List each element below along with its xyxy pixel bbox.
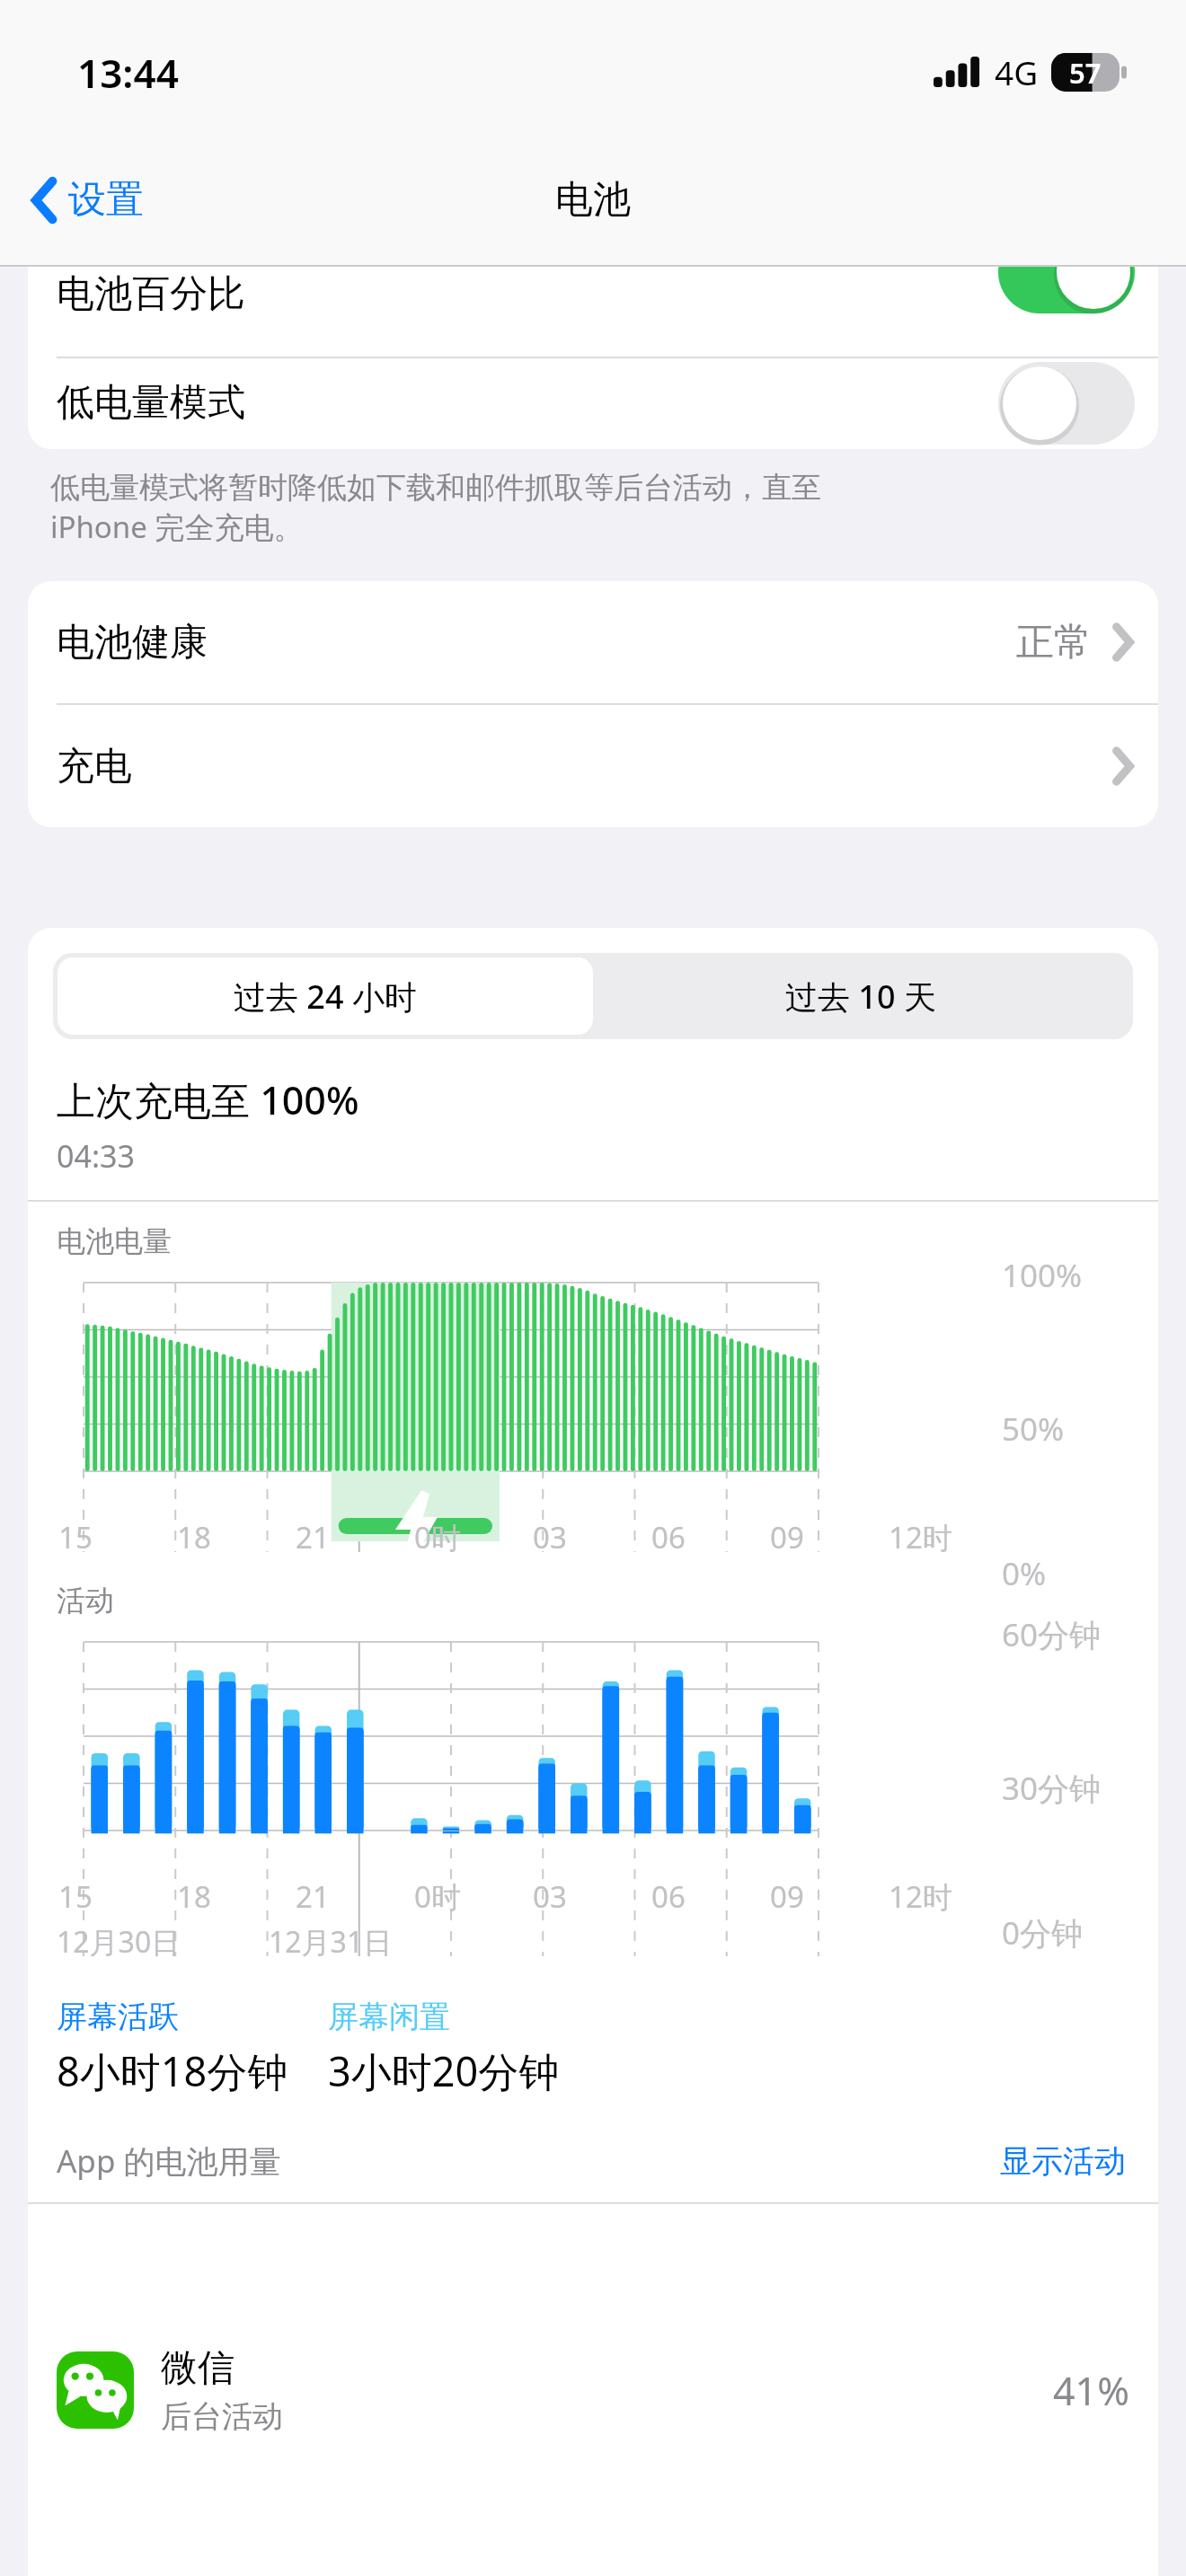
staticText: App 的电池用量 xyxy=(57,2139,281,2183)
button[interactable]: 过去 10 天 xyxy=(593,957,1128,1035)
staticText: 57 xyxy=(1069,54,1102,92)
staticText: 充电 xyxy=(57,743,132,790)
staticText: 09 xyxy=(770,1517,804,1557)
button[interactable]: 低电量模式 xyxy=(28,357,1158,449)
staticText: 41% xyxy=(1053,2364,1129,2417)
staticText: 50% xyxy=(1002,1407,1065,1451)
staticText: 60分钟 xyxy=(1002,1613,1102,1656)
staticText: 21 xyxy=(296,1517,330,1557)
button[interactable]: Off xyxy=(998,362,1135,445)
staticText: 4G xyxy=(995,49,1039,94)
staticText: 电池 xyxy=(555,176,631,224)
staticText: 04:33 xyxy=(57,1135,135,1177)
staticText: 低电量模式 xyxy=(57,379,245,427)
staticText: 屏幕活跃 xyxy=(57,1998,179,2036)
staticText: 06 xyxy=(651,1517,686,1557)
staticText: 后台活动 xyxy=(161,2397,283,2436)
staticText: 15 xyxy=(58,1517,93,1557)
staticText: 设置 xyxy=(68,176,144,224)
staticText: 12月31日 xyxy=(269,1922,393,1962)
staticText: 0时 xyxy=(414,1876,461,1917)
staticText: 电池百分比 xyxy=(57,270,245,318)
staticText: 15 xyxy=(58,1876,93,1917)
staticText: 微信 xyxy=(161,2345,235,2392)
staticText: 屏幕闲置 xyxy=(328,1998,450,2036)
staticText: 13:44 xyxy=(77,46,179,100)
button[interactable]: 电池百分比 xyxy=(28,267,1158,357)
staticText: 0时 xyxy=(414,1517,461,1557)
staticText: iPhone 完全充电。 xyxy=(50,507,304,547)
staticText: 12月30日 xyxy=(57,1922,181,1962)
staticText: 18 xyxy=(177,1876,211,1917)
staticText: 低电量模式将暂时降低如下载和邮件抓取等后台活动，直至 xyxy=(50,469,821,507)
button[interactable]: 微信 xyxy=(28,2204,1158,2576)
staticText: 09 xyxy=(770,1876,804,1917)
staticText: 3小时20分钟 xyxy=(328,2043,560,2098)
staticText: 电池健康 xyxy=(57,619,208,666)
button[interactable]: 充电 xyxy=(28,705,1158,827)
button[interactable]: 电池健康 xyxy=(28,581,1158,703)
button[interactable]: 设置 xyxy=(25,167,151,233)
staticText: 过去 24 小时 xyxy=(234,975,417,1019)
button[interactable]: 过去 24 小时 xyxy=(58,957,593,1035)
staticText: 0分钟 xyxy=(1002,1911,1084,1954)
staticText: 12时 xyxy=(889,1517,952,1557)
staticText: 活动 xyxy=(57,1583,114,1619)
button[interactable]: 显示活动 xyxy=(996,2138,1129,2184)
staticText: 06 xyxy=(651,1876,686,1917)
staticText: 过去 10 天 xyxy=(785,975,936,1019)
staticText: 电池电量 xyxy=(57,1223,172,1259)
staticText: 12时 xyxy=(889,1876,952,1917)
staticText: 03 xyxy=(533,1517,567,1557)
staticText: 正常 xyxy=(1016,619,1092,666)
staticText: 18 xyxy=(177,1517,211,1557)
staticText: 8小时18分钟 xyxy=(57,2043,288,2098)
staticText: 100% xyxy=(1002,1254,1083,1297)
staticText: 上次充电至 100% xyxy=(57,1073,359,1126)
staticText: 显示活动 xyxy=(1000,2141,1126,2181)
button[interactable]: On xyxy=(998,267,1135,313)
staticText: 21 xyxy=(296,1876,330,1917)
staticText: 03 xyxy=(533,1876,567,1917)
staticText: 0% xyxy=(1002,1552,1047,1595)
staticText: 30分钟 xyxy=(1002,1767,1102,1810)
